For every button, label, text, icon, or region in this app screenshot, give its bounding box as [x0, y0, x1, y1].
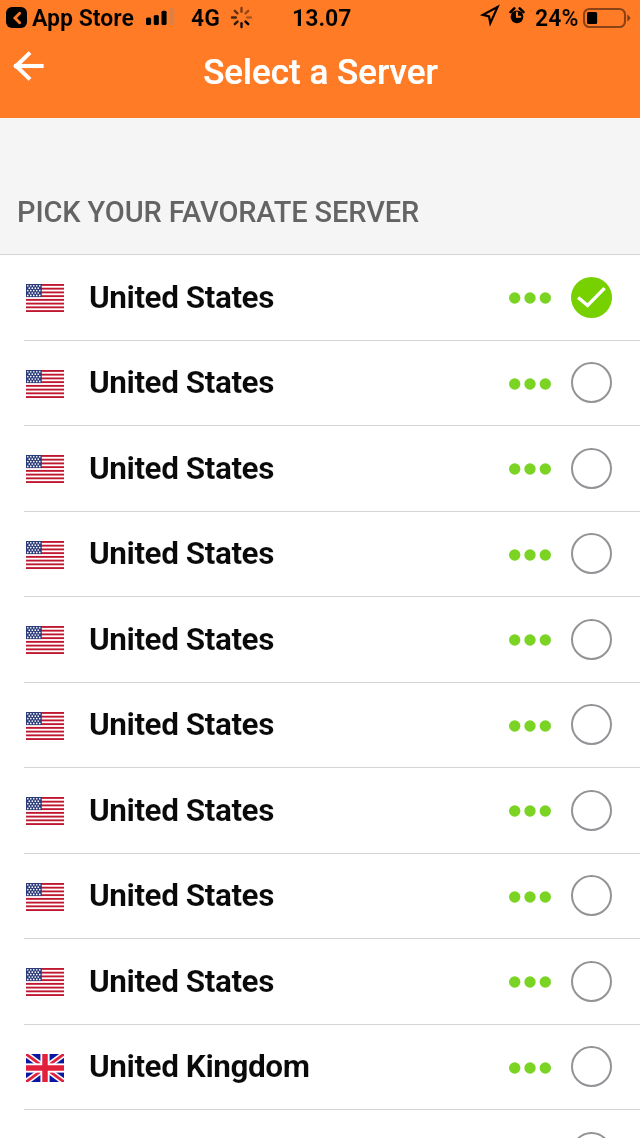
button[interactable]: Back to App Store — [6, 7, 27, 28]
button[interactable]: United States — [0, 682, 640, 767]
button[interactable]: United States — [0, 340, 640, 425]
staticText: App Store — [32, 5, 134, 32]
button[interactable]: Select this server — [571, 790, 612, 831]
staticText: United States — [89, 279, 274, 316]
button[interactable]: Select this server — [571, 961, 612, 1002]
button[interactable]: Select this server — [571, 875, 612, 916]
button[interactable]: Selected server — [571, 277, 612, 318]
button[interactable]: Select this server — [571, 1046, 612, 1087]
staticText: United States — [89, 963, 274, 1000]
button[interactable]: United Kingdom — [0, 1109, 640, 1138]
staticText: United States — [89, 535, 274, 572]
staticText: Select a Server — [203, 52, 438, 93]
staticText: United States — [89, 877, 274, 914]
staticText: United States — [89, 792, 274, 829]
button[interactable]: Select this server — [571, 619, 612, 660]
button[interactable]: United States — [0, 767, 640, 853]
staticText: United States — [89, 364, 274, 401]
button[interactable]: Select this server — [571, 533, 612, 574]
staticText: 24% — [535, 5, 579, 32]
staticText: United States — [89, 450, 274, 487]
staticText: PICK YOUR FAVORATE SERVER — [17, 195, 420, 229]
button[interactable]: Select this server — [571, 362, 612, 403]
button[interactable]: United States — [0, 425, 640, 511]
button[interactable]: Select this server — [571, 448, 612, 489]
button[interactable]: United States — [0, 511, 640, 596]
button[interactable]: United Kingdom — [0, 1024, 640, 1109]
staticText: United States — [89, 621, 274, 658]
staticText: United States — [89, 706, 274, 743]
button[interactable]: United States — [0, 254, 640, 340]
button[interactable]: Back — [5, 43, 50, 88]
button[interactable]: Select this server — [571, 1132, 612, 1138]
staticText: 4G — [191, 5, 220, 32]
staticText: 13.07 — [292, 5, 352, 32]
button[interactable]: United States — [0, 853, 640, 938]
button[interactable]: Select this server — [571, 704, 612, 745]
button[interactable]: United States — [0, 596, 640, 682]
button[interactable]: United States — [0, 938, 640, 1024]
staticText: United Kingdom — [89, 1048, 310, 1085]
